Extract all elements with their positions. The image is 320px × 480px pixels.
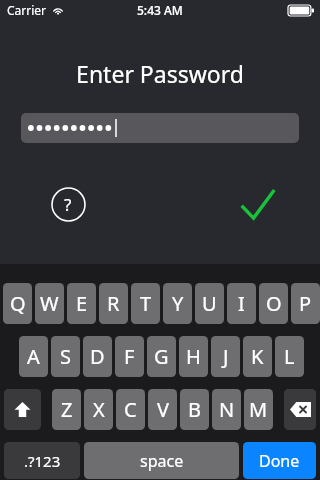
button[interactable]: Help: [50, 186, 86, 222]
staticText: M: [249, 396, 268, 423]
button[interactable]: K: [243, 336, 272, 377]
button[interactable]: Shift: [4, 389, 41, 430]
button[interactable]: I: [227, 283, 256, 324]
staticText: Enter Password: [0, 58, 320, 89]
button[interactable]: F: [115, 336, 144, 377]
staticText: C: [124, 396, 137, 423]
button[interactable]: .?123: [4, 442, 80, 479]
staticText: J: [223, 343, 229, 370]
staticText: .?123: [24, 451, 61, 471]
button[interactable]: J: [211, 336, 240, 377]
staticText: U: [202, 290, 217, 317]
button[interactable]: Confirm: [238, 184, 278, 224]
button[interactable]: C: [116, 389, 145, 430]
button[interactable]: V: [148, 389, 177, 430]
button[interactable]: M: [244, 389, 273, 430]
button[interactable]: O: [259, 283, 288, 324]
button[interactable]: space: [84, 442, 239, 479]
button[interactable]: R: [99, 283, 128, 324]
staticText: O: [266, 290, 282, 317]
button[interactable]: L: [275, 336, 304, 377]
staticText: Z: [61, 396, 73, 423]
button[interactable]: N: [212, 389, 241, 430]
staticText: T: [140, 290, 152, 317]
staticText: X: [93, 396, 105, 423]
staticText: D: [90, 343, 105, 370]
staticText: Y: [172, 290, 184, 317]
staticText: Q: [10, 290, 26, 317]
staticText: P: [299, 290, 312, 317]
staticText: K: [251, 343, 264, 370]
staticText: I: [238, 290, 245, 317]
button[interactable]: W: [35, 283, 64, 324]
staticText: L: [284, 343, 295, 370]
button[interactable]: Done: [243, 442, 316, 479]
staticText: G: [154, 343, 169, 370]
staticText: ?: [64, 193, 72, 216]
staticText: R: [107, 290, 120, 317]
button[interactable]: B: [180, 389, 209, 430]
button[interactable]: Backspace: [284, 389, 316, 430]
button[interactable]: P: [291, 283, 320, 324]
staticText: F: [124, 343, 135, 370]
button[interactable]: G: [147, 336, 176, 377]
staticText: V: [157, 396, 169, 423]
button[interactable]: Q: [3, 283, 32, 324]
button[interactable]: H: [179, 336, 208, 377]
staticText: space: [140, 450, 184, 472]
staticText: Carrier: [7, 2, 47, 18]
staticText: B: [188, 396, 201, 423]
staticText: S: [60, 343, 71, 370]
button[interactable]: A: [19, 336, 48, 377]
staticText: W: [40, 290, 59, 317]
staticText: A: [27, 343, 40, 370]
button[interactable]: X: [84, 389, 113, 430]
staticText: 5:43 AM: [137, 2, 183, 18]
staticText: N: [219, 396, 235, 423]
staticText: Done: [259, 450, 300, 472]
button[interactable]: Y: [163, 283, 192, 324]
button[interactable]: E: [67, 283, 96, 324]
button[interactable]: U: [195, 283, 224, 324]
staticText: E: [76, 290, 88, 317]
button[interactable]: [21, 113, 299, 143]
button[interactable]: Z: [52, 389, 81, 430]
button[interactable]: D: [83, 336, 112, 377]
button[interactable]: T: [131, 283, 160, 324]
button[interactable]: S: [51, 336, 80, 377]
staticText: H: [186, 343, 201, 370]
